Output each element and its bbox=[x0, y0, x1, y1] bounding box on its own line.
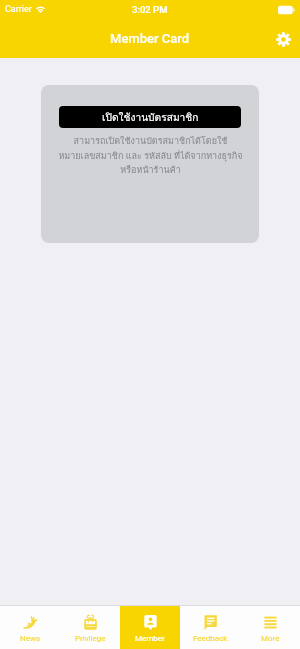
staticText: เปิดใช้งานบัตรสมาชิก bbox=[102, 109, 199, 125]
staticText: สามารถเปิดใช้งานบัตรสมาชิกได้โดยใช้ หมาย… bbox=[58, 134, 243, 177]
staticText: Member Card bbox=[110, 31, 190, 46]
button[interactable]: Feedback bbox=[180, 606, 240, 649]
staticText: News bbox=[20, 634, 41, 643]
staticText: Privilege bbox=[75, 634, 106, 643]
button[interactable]: Privilege bbox=[60, 606, 120, 649]
staticText: 3:02 PM bbox=[132, 4, 168, 15]
staticText: Member bbox=[135, 634, 165, 643]
staticText: More bbox=[261, 634, 280, 643]
staticText: Carrier bbox=[5, 4, 32, 15]
button[interactable]: Member bbox=[120, 606, 180, 649]
button[interactable]: News bbox=[0, 606, 60, 649]
staticText: Feedback bbox=[193, 634, 228, 643]
button[interactable]: More bbox=[240, 606, 300, 649]
button[interactable]: Settings bbox=[266, 22, 300, 56]
